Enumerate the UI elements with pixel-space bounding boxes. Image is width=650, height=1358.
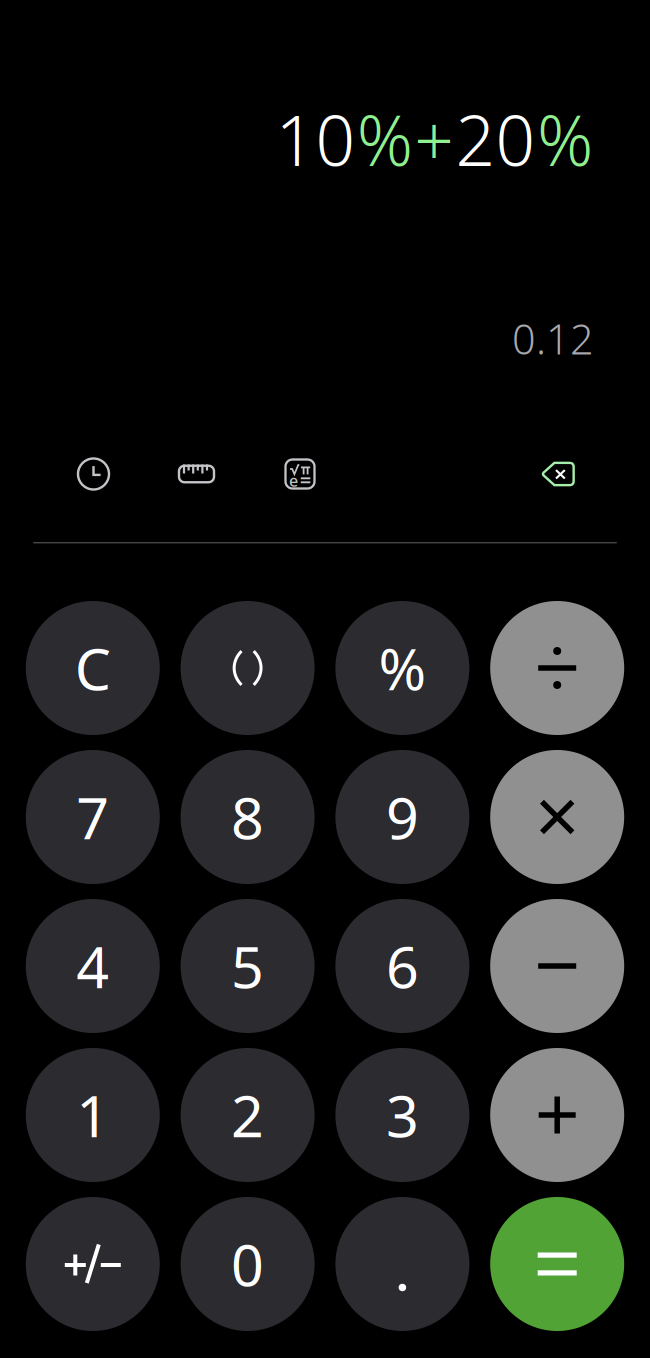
staticText: C bbox=[75, 630, 111, 706]
staticText: 10 bbox=[275, 93, 355, 185]
button[interactable]: 3 bbox=[335, 1048, 469, 1182]
staticText: 0 bbox=[231, 1226, 264, 1302]
staticText: 2 bbox=[231, 1077, 264, 1153]
button[interactable]: Add bbox=[490, 1048, 624, 1182]
staticText: 5 bbox=[231, 928, 264, 1004]
button[interactable]: Unit converter bbox=[178, 464, 215, 483]
button[interactable]: C bbox=[26, 601, 160, 735]
button[interactable]: Divide bbox=[490, 601, 624, 735]
button[interactable]: 9 bbox=[335, 750, 469, 884]
staticText: % bbox=[378, 630, 426, 706]
button[interactable]: Decimal point bbox=[335, 1197, 469, 1331]
button[interactable]: 2 bbox=[181, 1048, 315, 1182]
staticText: 7 bbox=[76, 779, 109, 855]
button[interactable]: 7 bbox=[26, 750, 160, 884]
staticText: 1 bbox=[76, 1077, 109, 1153]
button[interactable]: 8 bbox=[181, 750, 315, 884]
staticText: 4 bbox=[76, 928, 109, 1004]
staticText: 6 bbox=[386, 928, 419, 1004]
button[interactable]: History bbox=[77, 457, 110, 490]
staticText: 8 bbox=[231, 779, 264, 855]
button[interactable]: Multiply bbox=[490, 750, 624, 884]
button[interactable]: 5 bbox=[181, 899, 315, 1033]
button[interactable]: 4 bbox=[26, 899, 160, 1033]
staticText: + bbox=[414, 93, 454, 185]
button[interactable]: 0 bbox=[181, 1197, 315, 1331]
button[interactable]: Delete bbox=[541, 461, 575, 486]
button[interactable]: Plus minus bbox=[26, 1197, 160, 1331]
button[interactable]: % bbox=[335, 601, 469, 735]
button[interactable]: Subtract bbox=[490, 899, 624, 1033]
staticText: 3 bbox=[386, 1077, 419, 1153]
button[interactable]: Scientific calculator bbox=[284, 458, 316, 490]
button[interactable]: Equals bbox=[490, 1197, 624, 1331]
staticText: e bbox=[289, 470, 298, 491]
button[interactable]: Parentheses bbox=[181, 601, 315, 735]
staticText: 9 bbox=[386, 779, 419, 855]
staticText: 0.12 bbox=[512, 311, 594, 366]
staticText: % bbox=[537, 93, 593, 185]
button[interactable]: 1 bbox=[26, 1048, 160, 1182]
staticText: 20 bbox=[456, 93, 536, 185]
staticText: % bbox=[357, 93, 413, 185]
button[interactable]: 6 bbox=[335, 899, 469, 1033]
